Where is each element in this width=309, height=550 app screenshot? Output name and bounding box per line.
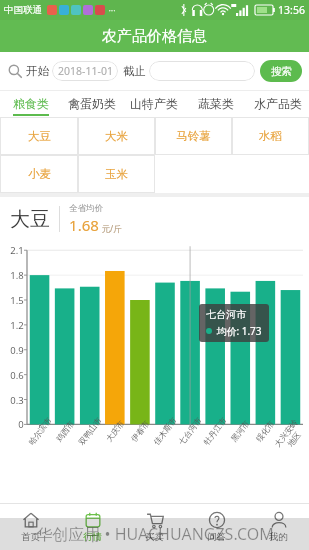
staticText: 小麦 bbox=[28, 167, 51, 181]
button[interactable]: 2018-11-01 bbox=[52, 61, 118, 81]
staticText: 截止 bbox=[123, 64, 146, 78]
button[interactable]: 大豆 bbox=[0, 117, 78, 155]
staticText: 0.9 bbox=[10, 344, 24, 357]
staticText: 粮食类 bbox=[13, 96, 49, 111]
staticText: 黑河市 bbox=[229, 418, 251, 444]
staticText: 买卖 bbox=[145, 531, 164, 543]
staticText: 行情 bbox=[83, 531, 102, 543]
button[interactable]: 山特产类 bbox=[123, 91, 185, 117]
staticText: 搜索 bbox=[271, 65, 292, 78]
button[interactable]: 小麦 bbox=[0, 155, 78, 193]
button[interactable]: 大米 bbox=[78, 117, 155, 155]
staticText: 大兴安岭地区 bbox=[272, 417, 308, 455]
staticText: 马铃薯 bbox=[176, 129, 211, 143]
staticText: 玉米 bbox=[105, 167, 128, 181]
button[interactable]: 水稻 bbox=[232, 117, 309, 155]
staticText: 均价: 1.73 bbox=[216, 324, 262, 338]
staticText: 全省均价 bbox=[69, 203, 103, 214]
staticText: 水稻 bbox=[259, 129, 282, 143]
staticText: 哈尔滨市 bbox=[26, 415, 54, 447]
staticText: 双鸭山市 bbox=[76, 415, 104, 447]
button[interactable]: 行情 bbox=[61, 504, 123, 550]
staticText: 大豆 bbox=[10, 207, 50, 232]
staticText: 2018-11-01 bbox=[58, 64, 113, 78]
button[interactable]: 马铃薯 bbox=[155, 117, 232, 155]
staticText: 2.1 bbox=[10, 244, 24, 257]
staticText: 首页 bbox=[21, 531, 40, 543]
staticText: 中国联通 bbox=[4, 4, 42, 16]
button[interactable]: 粮食类 bbox=[0, 91, 61, 117]
button[interactable]: 买卖 bbox=[123, 504, 185, 550]
staticText: 牡丹江市 bbox=[201, 415, 229, 447]
staticText: ··· bbox=[108, 4, 116, 16]
staticText: 我的 bbox=[269, 531, 288, 543]
staticText: 开始 bbox=[26, 64, 49, 78]
staticText: 问答 bbox=[207, 531, 226, 543]
staticText: 七台河市 bbox=[176, 415, 204, 447]
staticText: 农产品价格信息 bbox=[102, 27, 207, 46]
staticText: 1.5 bbox=[10, 294, 24, 307]
button[interactable]: 玉米 bbox=[78, 155, 155, 193]
button[interactable]: 问答 bbox=[185, 504, 247, 550]
staticText: 华创应用 • HUACHUANGZS.COM bbox=[36, 523, 274, 545]
staticText: 山特产类 bbox=[130, 96, 178, 111]
staticText: 1.68 bbox=[69, 215, 99, 235]
staticText: 禽蛋奶类 bbox=[68, 96, 116, 111]
staticText: 佳木斯市 bbox=[151, 415, 179, 447]
button[interactable]: 蔬菜类 bbox=[185, 91, 247, 117]
staticText: 0.3 bbox=[10, 394, 24, 407]
staticText: 1.2 bbox=[10, 319, 24, 332]
staticText: 大豆 bbox=[28, 129, 51, 143]
staticText: 元/斤 bbox=[101, 223, 122, 235]
button[interactable]: 禽蛋奶类 bbox=[61, 91, 123, 117]
staticText: 1.8 bbox=[10, 269, 24, 282]
staticText: 七台河市 bbox=[206, 308, 246, 321]
staticText: 大庆市 bbox=[104, 418, 126, 444]
button[interactable]: 首页 bbox=[0, 504, 61, 550]
button[interactable]: 搜索 bbox=[7, 63, 23, 79]
staticText: 0.6 bbox=[10, 369, 24, 382]
staticText: 水产品类 bbox=[254, 96, 302, 111]
staticText: 0 bbox=[18, 418, 24, 431]
staticText: 蔬菜类 bbox=[198, 96, 234, 111]
button[interactable]: 搜索 bbox=[260, 60, 302, 82]
button[interactable]: 水产品类 bbox=[247, 91, 309, 117]
staticText: 13:56 bbox=[278, 3, 305, 17]
button[interactable]: 我的 bbox=[247, 504, 309, 550]
staticText: 绥化市 bbox=[254, 418, 276, 444]
button[interactable] bbox=[149, 61, 255, 81]
staticText: 伊春市 bbox=[129, 418, 151, 444]
staticText: 鸡西市 bbox=[54, 418, 76, 444]
staticText: 大米 bbox=[105, 129, 128, 143]
